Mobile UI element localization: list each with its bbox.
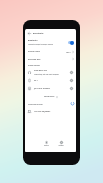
staticText: Bluetooth bbox=[33, 32, 44, 35]
staticText: PAIRED DEVICES bbox=[28, 64, 40, 66]
button[interactable]: Bluetooth on bbox=[67, 40, 74, 45]
staticText: Received files bbox=[28, 58, 41, 61]
button[interactable]: Pixel Buds Pro bbox=[25, 68, 76, 76]
button[interactable]: Device settings bbox=[69, 70, 74, 75]
staticText: Show more bbox=[44, 95, 55, 98]
button[interactable]: Device settings bbox=[69, 86, 74, 91]
staticText: Settings bbox=[58, 145, 64, 147]
staticText: Currently visible to nearby devices bbox=[28, 43, 54, 45]
staticText: Connected, left and right earbuds bbox=[34, 73, 59, 75]
staticText: Pixel 7 bbox=[66, 51, 71, 53]
staticText: Bluetooth bbox=[28, 39, 38, 42]
staticText: Devices bbox=[44, 145, 49, 147]
button[interactable]: Device name bbox=[25, 47, 76, 56]
button[interactable]: LAPTOP-9GJ8E3RS bbox=[25, 107, 76, 115]
staticText: LAPTOP-9GJ8E3RS bbox=[34, 110, 51, 113]
button[interactable]: Received files bbox=[25, 56, 76, 62]
button[interactable]: JBL Flip 5 speaker bbox=[25, 84, 76, 92]
staticText: AVAILABLE DEVICES bbox=[28, 103, 43, 105]
button[interactable]: Show more bbox=[25, 92, 76, 100]
button[interactable]: Settings bbox=[57, 140, 65, 147]
staticText: JBL Flip 5 speaker bbox=[34, 87, 51, 90]
button[interactable]: Devices bbox=[43, 140, 50, 147]
staticText: XE 1 bbox=[34, 79, 38, 82]
button[interactable]: Back bbox=[27, 31, 32, 36]
staticText: Pixel Buds Pro bbox=[34, 69, 48, 72]
button[interactable]: XE 1 bbox=[25, 76, 76, 84]
staticText: Device name bbox=[28, 50, 40, 53]
button[interactable]: Bluetooth bbox=[25, 37, 76, 47]
button[interactable]: Device settings bbox=[69, 78, 74, 83]
